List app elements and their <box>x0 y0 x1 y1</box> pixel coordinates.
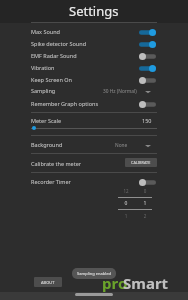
button[interactable]: 1 <box>122 213 130 219</box>
button[interactable]: Background <box>0 138 188 151</box>
staticText: Keep Screen On <box>31 76 72 83</box>
staticText: Meter Scale <box>31 117 62 124</box>
button[interactable]: Vibration <box>0 61 188 73</box>
staticText: ABOUT <box>41 280 55 285</box>
button[interactable]: 2 <box>141 213 149 219</box>
button[interactable]: 12 <box>122 188 130 194</box>
button[interactable]: EMF Radar Sound <box>0 49 188 61</box>
staticText: Background <box>31 141 63 148</box>
staticText: Vibration <box>31 64 55 71</box>
staticText: None <box>115 142 128 149</box>
button[interactable]: Remember Graph options <box>0 97 188 109</box>
staticText: Settings <box>69 2 119 20</box>
staticText: 30 Hz (Normal) <box>103 88 137 95</box>
staticText: EMF Radar Sound <box>31 52 77 59</box>
staticText: Smart <box>123 273 169 293</box>
staticText: 150 <box>142 117 152 124</box>
button[interactable]: CALIBRATE <box>125 158 157 167</box>
button[interactable]: Max Sound <box>0 25 188 37</box>
button[interactable]: Sampling <box>0 85 188 97</box>
button[interactable]: Keep Screen On <box>0 73 188 85</box>
staticText: Remember Graph options <box>31 100 99 107</box>
staticText: pro <box>102 273 128 293</box>
button[interactable]: ABOUT <box>34 277 62 287</box>
button[interactable]: 1 <box>141 200 149 207</box>
staticText: Sampling enabled <box>77 271 111 276</box>
staticText: CALIBRATE <box>131 160 151 165</box>
staticText: Calibrate the meter <box>31 160 82 167</box>
staticText: Max Sound <box>31 28 60 35</box>
staticText: Recorder Timer <box>31 178 71 185</box>
button[interactable]: 0 <box>141 188 149 194</box>
button[interactable]: Spike detector Sound <box>0 37 188 49</box>
staticText: Sampling <box>31 87 56 94</box>
button[interactable]: Recorder Timer <box>0 175 188 187</box>
staticText: Spike detector Sound <box>31 40 87 47</box>
button[interactable]: Meter Scale <box>0 116 188 134</box>
button[interactable]: 0 <box>122 200 130 207</box>
button[interactable]: Home <box>75 293 113 296</box>
